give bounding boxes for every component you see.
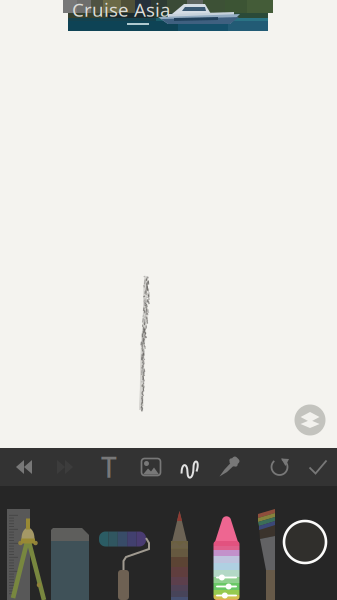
button[interactable]: Brush Stroke [171, 448, 209, 486]
button[interactable]: Paint roller [0, 486, 337, 600]
button[interactable]: Current colour [0, 486, 337, 600]
button[interactable]: Layers [288, 398, 332, 442]
button[interactable]: Brush [0, 486, 337, 600]
button[interactable]: Color Picker [210, 448, 248, 486]
button[interactable]: Reset [261, 448, 299, 486]
button[interactable]: Eraser [0, 486, 337, 600]
staticText: T [101, 448, 117, 486]
button[interactable]: Crayon [0, 486, 337, 600]
button[interactable]: Insert Photo [132, 448, 170, 486]
button[interactable]: Done [299, 448, 337, 486]
staticText: Cruise Asia [72, 0, 170, 22]
button[interactable]: Text [90, 448, 128, 486]
button[interactable]: Undo [5, 448, 43, 486]
button[interactable]: Ruler and compass [0, 486, 337, 600]
button[interactable]: Cruise Asia advertisement [68, 0, 268, 31]
button[interactable]: Pencil [0, 486, 337, 600]
